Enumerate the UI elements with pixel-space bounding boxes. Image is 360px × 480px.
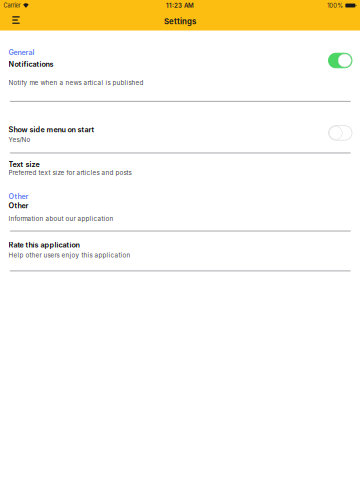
staticText: Text size (9, 160, 40, 169)
staticText: 100% (327, 2, 343, 9)
staticText: General (9, 48, 35, 57)
staticText: Other (9, 192, 29, 201)
staticText: Show side menu on start (9, 125, 95, 134)
button[interactable]: Menu (7, 12, 25, 29)
staticText: Yes/No (9, 136, 31, 143)
staticText: Notify me when a news artical is publish… (9, 79, 144, 87)
staticText: 11:23 AM (166, 2, 194, 9)
button[interactable]: Text size (0, 153, 360, 176)
staticText: Notifications (9, 60, 54, 68)
staticText: Other (9, 201, 29, 210)
button[interactable]: Rate this application (0, 231, 360, 270)
button[interactable]: Show side menu on start (0, 102, 360, 152)
staticText: Information about our application (9, 215, 114, 222)
staticText: Preferred text size for articles and pos… (9, 169, 132, 176)
button[interactable]: Notifications (0, 57, 360, 101)
staticText: Help other users enjoy this application (9, 251, 131, 259)
staticText: Settings (164, 17, 196, 26)
button[interactable]: Other (0, 201, 360, 230)
staticText: Carrier (3, 2, 20, 9)
staticText: Rate this application (9, 240, 80, 249)
